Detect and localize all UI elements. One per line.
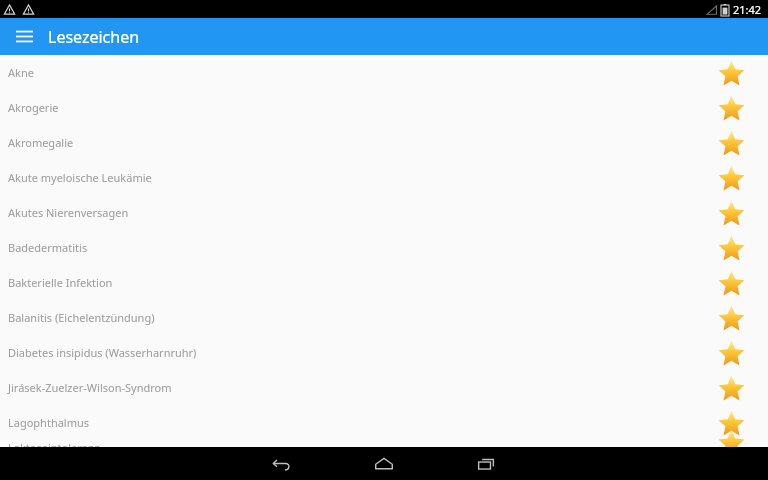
staticText: Diabetes insipidus (Wasserharnruhr) (8, 345, 197, 360)
button[interactable]: Akutes Nierenversagen (0, 195, 768, 230)
button[interactable]: Akute myeloische Leukämie (0, 160, 768, 195)
button[interactable]: Remove bookmark (716, 198, 746, 228)
button[interactable]: Akromegalie (0, 125, 768, 160)
button[interactable]: Remove bookmark (716, 373, 746, 403)
button[interactable]: Balanitis (Eichelentzündung) (0, 300, 768, 335)
staticText: Balanitis (Eichelentzündung) (8, 310, 155, 325)
button[interactable]: Bakterielle Infektion (0, 265, 768, 300)
button[interactable]: Remove bookmark (716, 128, 746, 158)
button[interactable]: Remove bookmark (716, 440, 746, 447)
staticText: Akromegalie (8, 135, 74, 150)
button[interactable]: Remove bookmark (716, 93, 746, 123)
staticText: Akute myeloische Leukämie (8, 170, 152, 185)
button[interactable]: Remove bookmark (716, 338, 746, 368)
staticText: Lagophthalmus (8, 415, 90, 430)
staticText: Akutes Nierenversagen (8, 205, 129, 220)
button[interactable]: Laktoseintoleranz (0, 440, 768, 447)
button[interactable]: Remove bookmark (716, 163, 746, 193)
staticText: Badedermatitis (8, 240, 88, 255)
staticText: Laktoseintoleranz (8, 440, 100, 447)
button[interactable]: Badedermatitis (0, 230, 768, 265)
button[interactable]: Back (258, 447, 306, 480)
staticText: 21:42 (733, 2, 762, 17)
button[interactable]: Remove bookmark (716, 303, 746, 333)
button[interactable]: Akne (0, 55, 768, 90)
button[interactable]: Home (360, 447, 408, 480)
staticText: Lesezeichen (48, 26, 140, 48)
button[interactable]: Remove bookmark (716, 408, 746, 438)
staticText: Jirásek-Zuelzer-Wilson-Syndrom (8, 380, 172, 395)
button[interactable]: Jirásek-Zuelzer-Wilson-Syndrom (0, 370, 768, 405)
staticText: Bakterielle Infektion (8, 275, 113, 290)
button[interactable]: Remove bookmark (716, 268, 746, 298)
staticText: Akne (8, 65, 34, 80)
staticText: Akrogerie (8, 100, 59, 115)
button[interactable]: Akrogerie (0, 90, 768, 125)
button[interactable]: Lagophthalmus (0, 405, 768, 440)
button[interactable]: Diabetes insipidus (Wasserharnruhr) (0, 335, 768, 370)
button[interactable]: Recent apps (462, 447, 510, 480)
button[interactable]: Open navigation menu (0, 18, 48, 55)
button[interactable]: Remove bookmark (716, 58, 746, 88)
button[interactable]: Remove bookmark (716, 233, 746, 263)
